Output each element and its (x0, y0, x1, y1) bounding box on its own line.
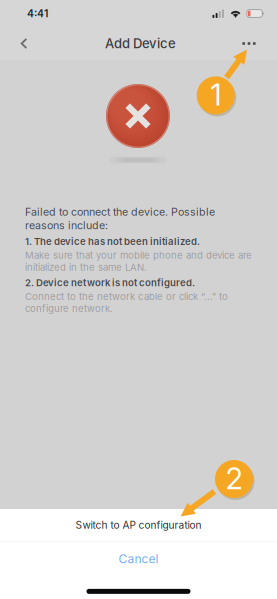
button[interactable]: Switch to AP configuration (0, 509, 277, 541)
button[interactable]: Cancel (0, 542, 277, 576)
staticText: Failed to connect the device. Possible r… (25, 205, 215, 232)
staticText: Switch to AP configuration (75, 519, 201, 531)
staticText: 4:41 (27, 7, 48, 20)
staticText: 1. The device has not been initialized. (25, 236, 200, 247)
staticText: 1 (210, 77, 221, 113)
staticText: 2. Device network is not configured. (25, 277, 195, 289)
staticText: Add Device (105, 36, 176, 51)
staticText: Connect to the network cable or click “.… (25, 291, 228, 314)
staticText: Cancel (118, 552, 158, 566)
staticText: Make sure that your mobile phone and dev… (25, 249, 252, 273)
staticText: 2 (225, 461, 242, 496)
button[interactable]: More options (233, 28, 277, 59)
button[interactable]: Back (0, 28, 39, 59)
